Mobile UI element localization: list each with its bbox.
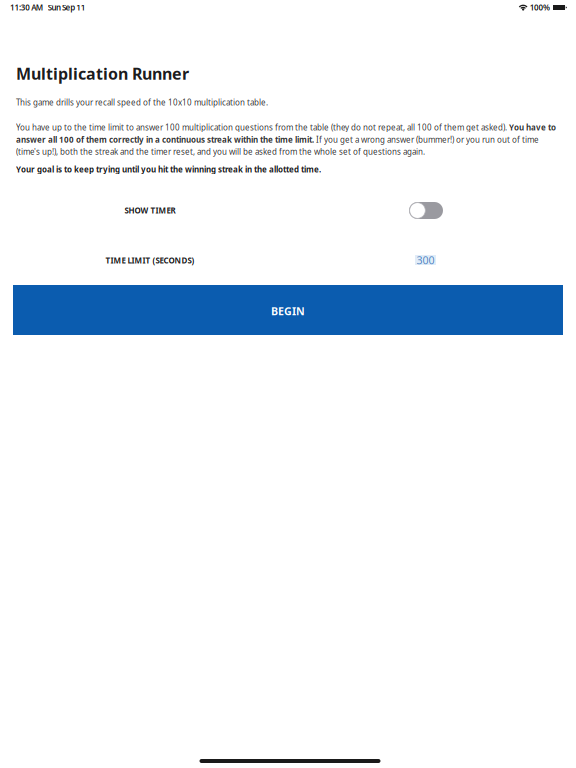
staticText: SHOW TIMER — [124, 205, 175, 216]
staticText: This game drills your recall speed of th… — [16, 97, 268, 108]
staticText: 300 — [416, 253, 434, 267]
staticText: Your goal is to keep trying until you hi… — [16, 164, 321, 175]
button[interactable]: Show timer, off — [409, 202, 443, 219]
button[interactable]: Time limit in seconds, 300 — [415, 255, 436, 265]
staticText: TIME LIMIT (SECONDS) — [105, 255, 194, 266]
staticText: 11:30 AM — [10, 2, 43, 13]
staticText: Multiplication Runner — [16, 63, 189, 84]
staticText: 100% — [530, 2, 550, 13]
staticText: BEGIN — [271, 304, 305, 318]
staticText: Sun Sep 11 — [48, 2, 86, 13]
staticText: You have up to the time limit to answer … — [16, 122, 556, 157]
button[interactable]: BEGIN — [13, 285, 563, 335]
